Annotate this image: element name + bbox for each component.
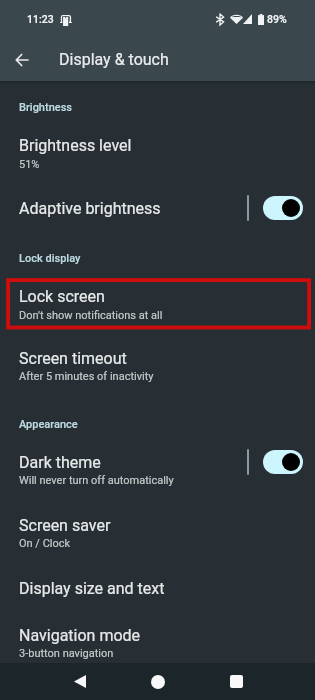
staticText: Don't show notifications at all	[19, 309, 163, 322]
staticText: Screen saver	[19, 516, 111, 535]
staticText: Appearance	[19, 418, 78, 431]
button[interactable]: Recent apps	[214, 663, 258, 700]
staticText: Display & touch	[59, 50, 169, 69]
button[interactable]: Home	[136, 663, 180, 700]
button[interactable]: Adaptive brightness	[0, 181, 315, 228]
staticText: 3-button navigation	[19, 647, 114, 660]
staticText: Navigation mode	[19, 626, 141, 645]
staticText: Will never turn off automatically	[19, 474, 174, 487]
staticText: 89%	[267, 13, 287, 25]
button[interactable]: Brightness level	[0, 118, 315, 173]
button[interactable]: Lock screen	[0, 269, 315, 324]
button[interactable]: Back	[58, 663, 102, 700]
staticText: After 5 minutes of inactivity	[19, 370, 154, 383]
staticText: Brightness	[19, 101, 73, 114]
button[interactable]: Toggle Dark theme	[263, 450, 303, 474]
button[interactable]: Screen timeout	[0, 331, 315, 386]
button[interactable]: Navigation mode	[0, 608, 315, 663]
staticText: Display size and text	[19, 579, 165, 598]
staticText: Brightness level	[19, 136, 132, 155]
button[interactable]: Toggle Adaptive brightness	[263, 196, 303, 220]
staticText: 51%	[19, 158, 40, 171]
button[interactable]: Dark theme	[0, 435, 315, 490]
staticText: Dark theme	[19, 453, 101, 472]
staticText: Adaptive brightness	[19, 199, 161, 218]
staticText: 11:23	[27, 13, 54, 25]
button[interactable]: Display size and text	[0, 561, 315, 608]
staticText: Screen timeout	[19, 349, 127, 368]
button[interactable]: Navigate up	[2, 40, 42, 80]
staticText: Lock screen	[19, 287, 105, 306]
button[interactable]: Screen saver	[0, 498, 315, 553]
staticText: Lock display	[19, 252, 81, 265]
staticText: On / Clock	[19, 537, 71, 550]
